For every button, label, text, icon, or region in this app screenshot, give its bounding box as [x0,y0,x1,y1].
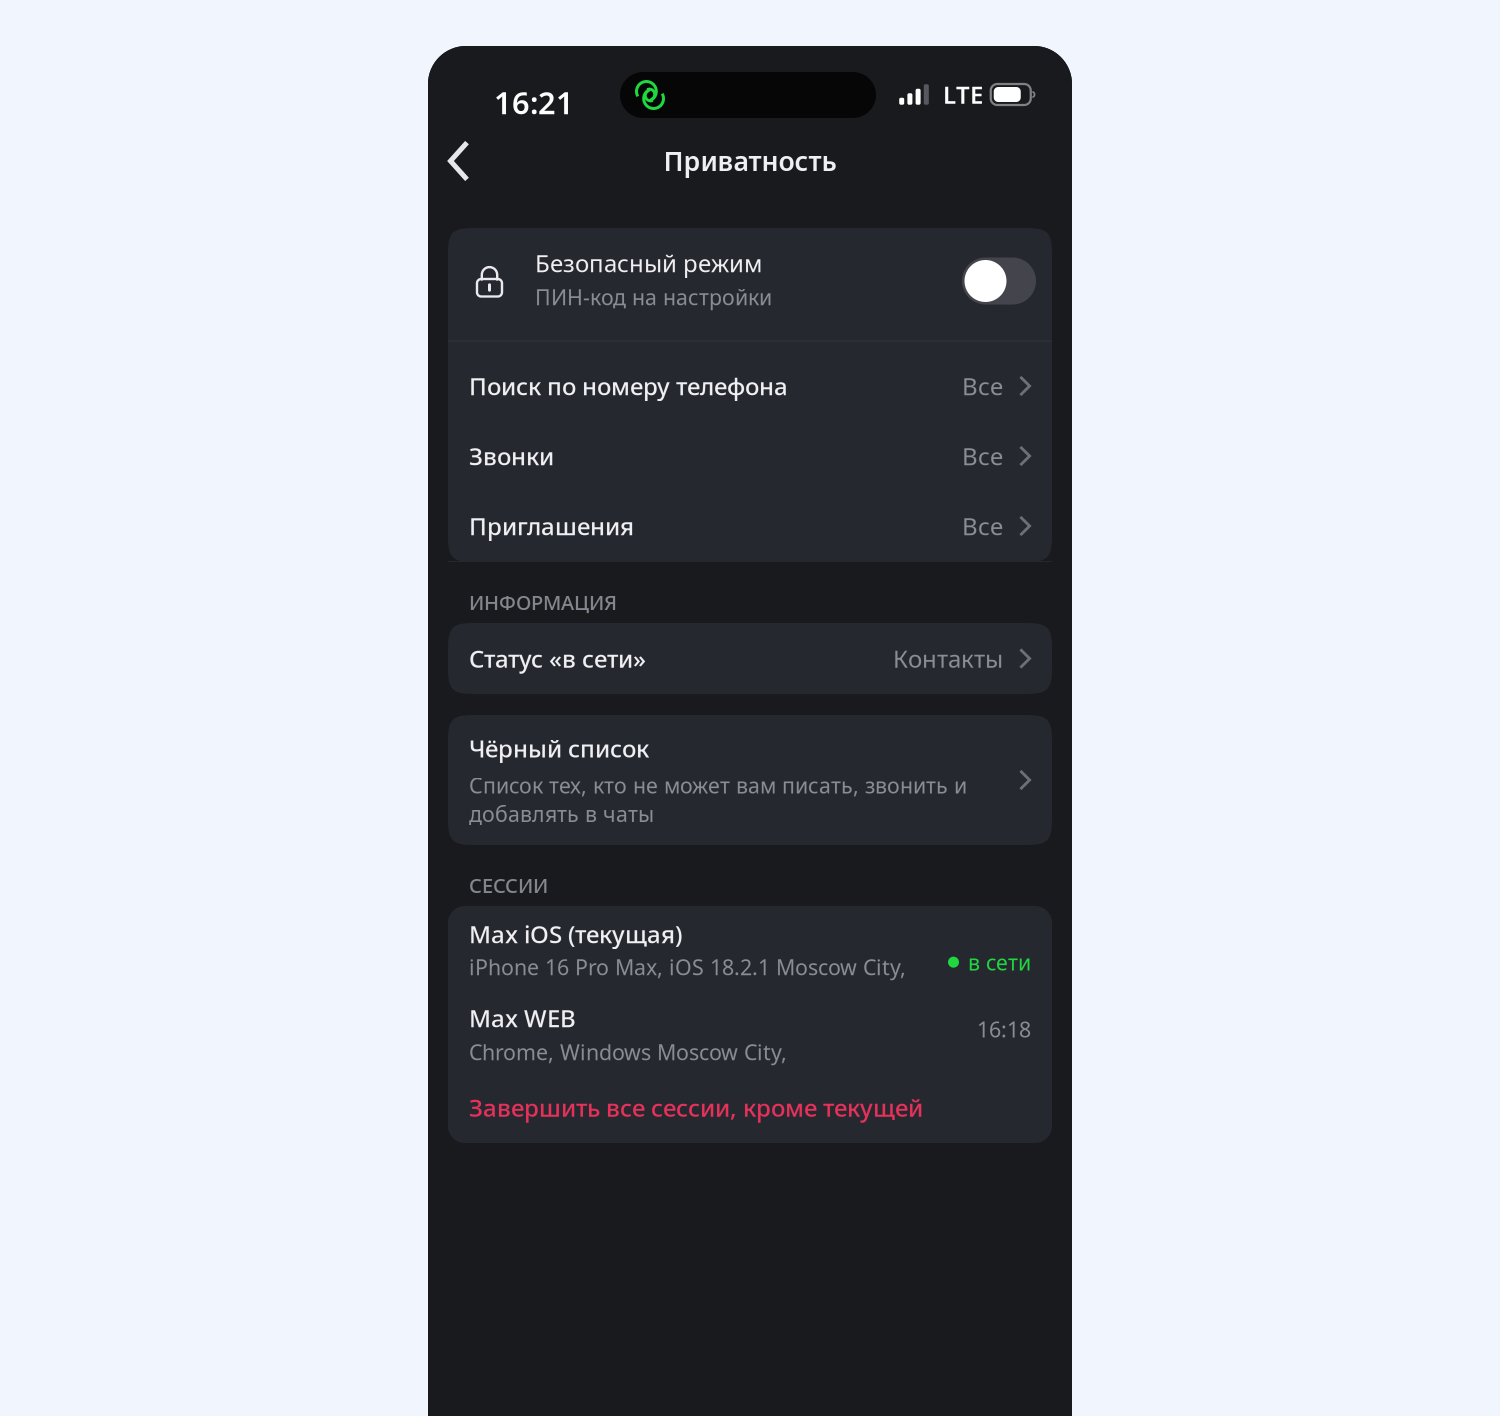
staticText: добавлять в чаты [469,799,654,828]
button[interactable]: Завершить все сессии, кроме текущей [448,1084,1052,1131]
staticText: Все [962,510,1003,542]
staticText: Контакты [893,643,1003,674]
button[interactable]: Назад [430,132,488,190]
button[interactable]: Max iOS (текущая) [448,918,1052,996]
staticText: Приватность [663,143,836,178]
staticText: СЕССИИ [469,872,548,899]
staticText: Статус «в сети» [469,643,646,674]
staticText: Max WEB [469,1002,576,1034]
button[interactable]: Безопасный режим [448,228,1052,340]
staticText: ПИН-код на настройки [535,283,772,311]
staticText: Все [962,370,1003,402]
staticText: LTE [943,79,983,110]
staticText: Звонки [469,440,554,472]
staticText: 16:21 [494,82,574,123]
staticText: ИНФОРМАЦИЯ [469,589,617,616]
staticText: Список тех, кто не может вам писать, зво… [469,771,967,799]
staticText: в сети [968,948,1031,976]
staticText: iPhone 16 Pro Max, iOS 18.2.1 Moscow Cit… [469,953,906,981]
staticText: 16:18 [977,1015,1031,1043]
staticText: Поиск по номеру телефона [469,370,788,402]
staticText: Приглашения [469,510,634,542]
button[interactable]: Max WEB [448,1002,1052,1080]
staticText: Max iOS (текущая) [469,918,682,950]
button[interactable]: Звонки [448,421,1052,491]
staticText: Завершить все сессии, кроме текущей [469,1092,923,1123]
staticText: Все [962,440,1003,472]
button[interactable]: Чёрный список [448,715,1052,845]
staticText: Безопасный режим [535,247,762,279]
button[interactable]: Статус «в сети» [448,623,1052,694]
staticText: Chrome, Windows Moscow City, [469,1038,787,1066]
staticText: Чёрный список [469,732,649,764]
button[interactable]: Поиск по номеру телефона [448,351,1052,421]
button[interactable]: Приглашения [448,491,1052,561]
